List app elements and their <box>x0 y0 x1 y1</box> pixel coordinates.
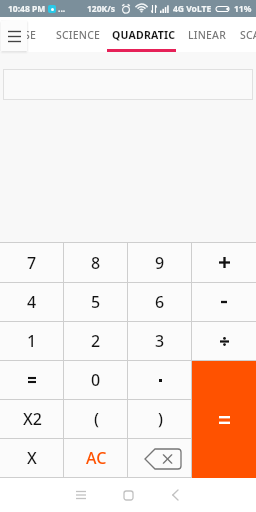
button[interactable]: 0 <box>64 361 128 399</box>
other: Equals <box>28 377 36 383</box>
button[interactable]: Plus <box>192 243 256 282</box>
button[interactable]: SCIENCE <box>56 17 101 52</box>
button[interactable]: Equals <box>192 361 256 478</box>
button[interactable]: 8 <box>64 243 128 282</box>
staticText: X <box>27 447 37 469</box>
staticText: 4 <box>27 291 37 313</box>
staticText: 1 <box>27 330 37 352</box>
other: Backspace <box>144 448 182 470</box>
button[interactable]: 1 <box>0 322 64 360</box>
staticText: 5 <box>91 291 101 313</box>
button[interactable]: Equals <box>0 361 64 399</box>
button[interactable]: SE <box>24 17 37 52</box>
staticText: SCIENCE <box>56 28 101 42</box>
staticText: 0 <box>91 369 101 391</box>
button[interactable]: ) <box>128 400 192 438</box>
staticText: ) <box>158 408 163 430</box>
staticText: LINEAR <box>188 28 227 42</box>
button[interactable]: 9 <box>128 243 192 282</box>
button[interactable]: Back <box>162 482 188 508</box>
staticText: 10:48 PM <box>8 3 46 15</box>
button[interactable]: LINEAR <box>188 17 227 52</box>
staticText: AC <box>86 447 107 469</box>
staticText: X2 <box>23 408 42 430</box>
button[interactable]: 4 <box>0 283 64 321</box>
button[interactable]: SCA <box>240 17 256 52</box>
staticText: SCA <box>240 28 256 42</box>
button[interactable]: AC <box>64 439 128 477</box>
button[interactable]: Decimal point <box>128 361 192 399</box>
other: Minus <box>221 299 227 305</box>
button[interactable]: 6 <box>128 283 192 321</box>
other: Divide <box>220 336 229 347</box>
button[interactable]: X2 <box>0 400 64 438</box>
staticText: ... <box>58 3 66 15</box>
staticText: 120K/s <box>87 3 116 15</box>
staticText: SE <box>24 28 37 42</box>
staticText: ( <box>94 408 99 430</box>
staticText: 3 <box>155 330 165 352</box>
staticText: 2 <box>91 330 101 352</box>
button[interactable]: Divide <box>192 322 256 360</box>
button[interactable]: 5 <box>64 283 128 321</box>
button[interactable]: QUADRATIC <box>112 17 181 52</box>
staticText: 9 <box>155 252 165 274</box>
button[interactable]: Minus <box>192 283 256 321</box>
button[interactable]: X <box>0 439 64 477</box>
button[interactable]: Recents <box>68 482 94 508</box>
other: Equals <box>219 416 230 424</box>
button[interactable]: 2 <box>64 322 128 360</box>
staticText: 8 <box>91 252 101 274</box>
staticText: QUADRATIC <box>112 28 176 42</box>
staticText: 6 <box>155 291 165 313</box>
staticText: 11% <box>234 3 252 15</box>
button[interactable]: Home <box>115 482 141 508</box>
button[interactable]: 3 <box>128 322 192 360</box>
button[interactable]: ( <box>64 400 128 438</box>
button[interactable]: Backspace <box>128 439 192 477</box>
button[interactable]: 7 <box>0 243 64 282</box>
button[interactable]: Menu <box>1 21 27 51</box>
staticText: 4G VoLTE <box>173 3 212 15</box>
other: Plus <box>219 257 230 268</box>
staticText: 7 <box>27 252 37 274</box>
